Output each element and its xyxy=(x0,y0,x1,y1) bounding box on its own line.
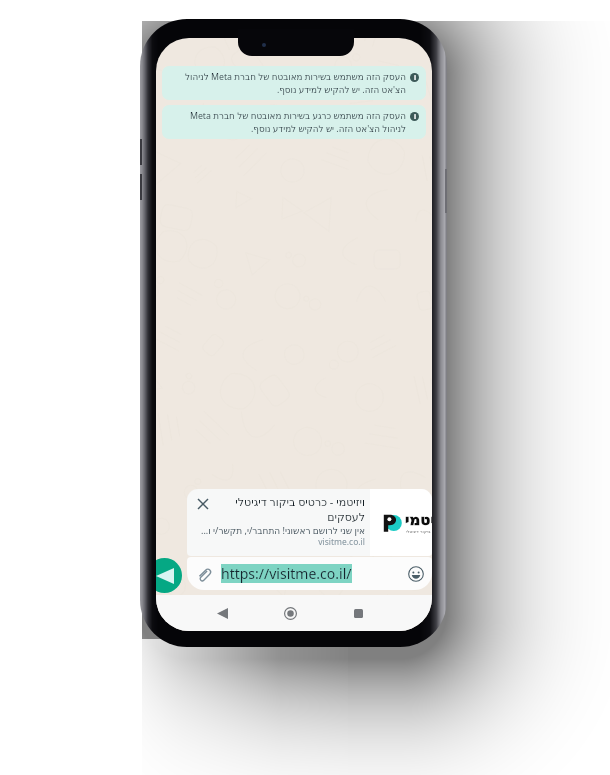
button[interactable]: i xyxy=(162,66,426,100)
staticText: ויזיטמי - כרטיס ביקור דיגיטלי לעסקים xyxy=(214,494,365,524)
button[interactable]: i xyxy=(162,105,426,139)
button[interactable]: Emoji xyxy=(406,564,426,584)
staticText: visitme.co.il xyxy=(192,536,365,548)
staticText: i xyxy=(413,73,416,82)
staticText: אין שני לרושם ראשוני! התחבר/י, תקשר/י ו.… xyxy=(192,524,365,536)
staticText: העסק הזה משתמש כרגע בשירות מאובטח של חבר… xyxy=(170,110,406,134)
button[interactable]: Back xyxy=(207,598,237,628)
staticText: העסק הזה משתמש בשירות מאובטח של חברת Met… xyxy=(170,71,406,95)
button[interactable]: Recents xyxy=(343,598,373,628)
button[interactable]: Close preview xyxy=(194,495,212,513)
button[interactable]: ויזיטמי xyxy=(187,489,432,556)
button[interactable]: Home xyxy=(275,598,305,628)
button[interactable]: Send xyxy=(156,558,182,593)
staticText: https://visitme.co.il/ xyxy=(221,564,352,583)
staticText: כרטיס ביקור דיגיטלי xyxy=(406,528,432,534)
staticText: i xyxy=(413,112,416,121)
staticText: ויזיטמי xyxy=(405,511,432,528)
button[interactable]: Attach xyxy=(193,564,213,584)
